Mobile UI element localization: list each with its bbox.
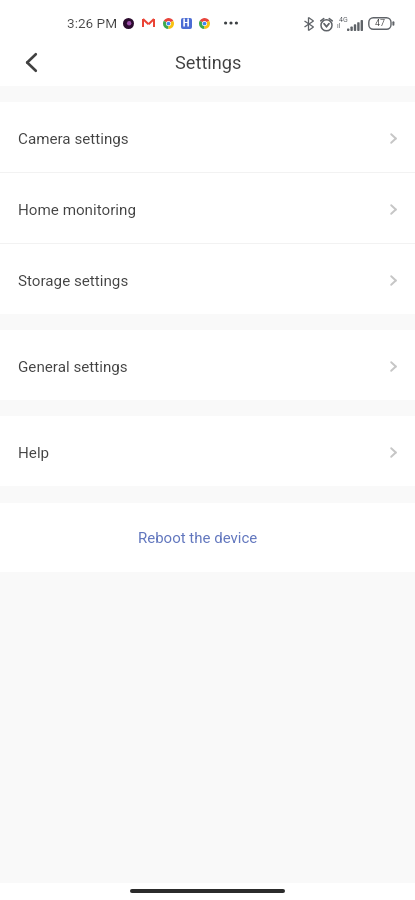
button[interactable]: General settings <box>0 330 415 400</box>
staticText: 4G <box>339 16 348 24</box>
button[interactable]: Reboot the device <box>0 503 415 572</box>
staticText: 47 <box>375 18 386 29</box>
button[interactable]: Help <box>0 416 415 486</box>
staticText: H <box>183 18 190 29</box>
staticText: Settings <box>175 52 242 73</box>
staticText: General settings <box>18 358 128 376</box>
staticText: 3:26 PM <box>67 15 118 31</box>
button[interactable]: Home monitoring <box>0 173 415 243</box>
staticText: Reboot the device <box>138 529 258 547</box>
staticText: Help <box>18 444 50 462</box>
button[interactable]: Back <box>12 43 50 81</box>
staticText: ıl <box>337 22 341 30</box>
staticText: Camera settings <box>18 130 129 148</box>
staticText: Home monitoring <box>18 201 136 219</box>
button[interactable]: Camera settings <box>0 102 415 172</box>
button[interactable]: Storage settings <box>0 244 415 314</box>
staticText: Storage settings <box>18 272 129 290</box>
